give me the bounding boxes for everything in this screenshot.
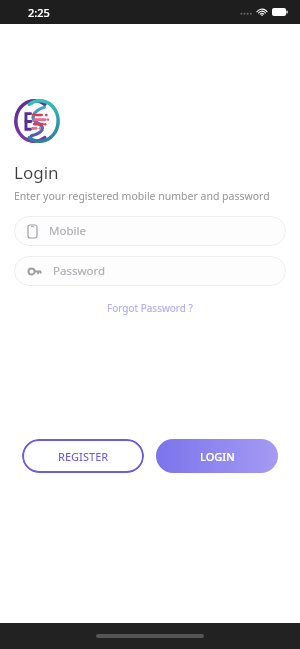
staticText: REGISTER (58, 449, 109, 464)
staticText: Enter your registered mobile number and … (14, 189, 270, 203)
staticText: Forgot Password ? (107, 301, 193, 315)
button[interactable]: Forgot Password ? (103, 299, 197, 317)
button[interactable]: Mobile (14, 216, 286, 246)
button[interactable]: REGISTER (22, 439, 144, 473)
staticText: Login (14, 161, 59, 184)
staticText: 2:25 (28, 5, 50, 20)
button[interactable]: LOGIN (156, 439, 278, 473)
staticText: Mobile (49, 223, 86, 239)
staticText: LOGIN (200, 449, 235, 464)
staticText: Password (53, 263, 106, 279)
button[interactable]: Password (14, 256, 286, 286)
other: App logo (14, 98, 60, 144)
